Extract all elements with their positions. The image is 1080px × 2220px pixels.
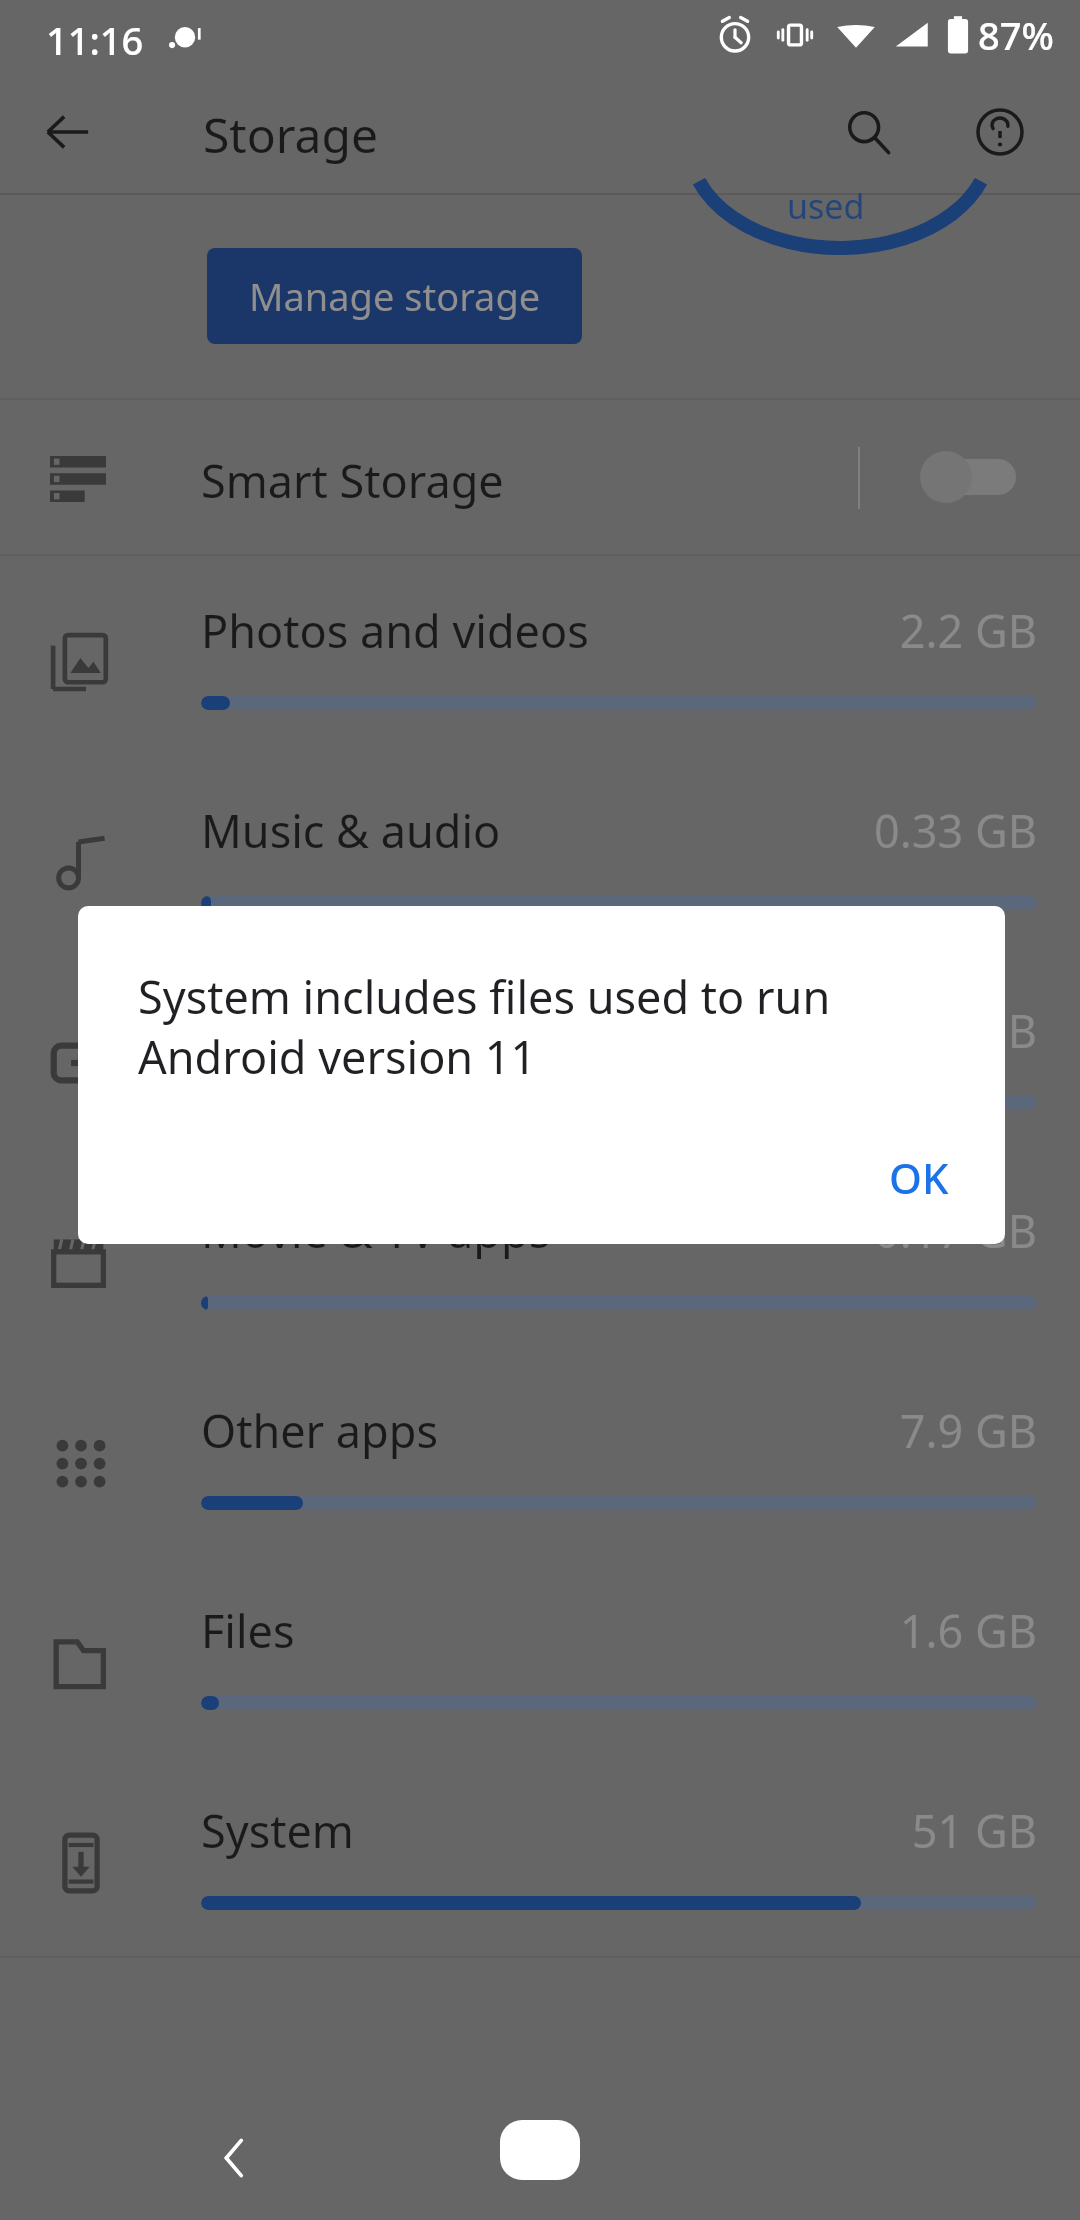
button[interactable]: Games xyxy=(0,956,1080,1156)
button[interactable]: Smart Storage xyxy=(0,400,1080,554)
staticText: Manage storage xyxy=(249,270,541,322)
staticText: 0.17 GB xyxy=(700,1200,1037,1261)
button[interactable]: Movie & TV apps xyxy=(0,1156,1080,1356)
button[interactable]: Music & audio xyxy=(0,756,1080,956)
staticText: Other apps xyxy=(201,1400,439,1461)
staticText: 51 GB xyxy=(700,1800,1037,1861)
button[interactable]: Back xyxy=(28,92,108,172)
button[interactable]: Other apps xyxy=(0,1356,1080,1556)
staticText: System xyxy=(201,1800,354,1861)
button[interactable]: Files xyxy=(0,1556,1080,1756)
button[interactable]: Smart Storage toggle xyxy=(920,445,1030,509)
staticText: Smart Storage xyxy=(201,450,504,511)
staticText: 7.9 GB xyxy=(700,1400,1037,1461)
staticText: 0.33 GB xyxy=(700,800,1037,861)
staticText: used xyxy=(787,183,865,229)
staticText: Games xyxy=(201,1000,349,1061)
staticText: System includes files used to run Androi… xyxy=(138,966,831,1087)
staticText: Music & audio xyxy=(201,800,501,861)
staticText: Files xyxy=(201,1600,295,1661)
button[interactable]: Photos and videos xyxy=(0,556,1080,756)
button[interactable]: OK xyxy=(863,1133,975,1222)
staticText: 0.00 GB xyxy=(700,1000,1037,1061)
button[interactable]: Manage storage xyxy=(207,248,582,344)
staticText: 2.2 GB xyxy=(700,600,1037,661)
button[interactable]: Search xyxy=(828,92,908,172)
staticText: 11:16 xyxy=(46,14,144,66)
staticText: Photos and videos xyxy=(201,600,589,661)
staticText: 87% xyxy=(978,9,1054,61)
button[interactable]: Back xyxy=(196,2118,276,2198)
button[interactable]: Help xyxy=(960,92,1040,172)
staticText: Movie & TV apps xyxy=(201,1200,551,1261)
button[interactable]: Home xyxy=(500,2120,580,2180)
staticText: Storage xyxy=(203,102,379,167)
button[interactable]: System xyxy=(0,1756,1080,1956)
staticText: 1.6 GB xyxy=(700,1600,1037,1661)
staticText: OK xyxy=(889,1149,949,1206)
